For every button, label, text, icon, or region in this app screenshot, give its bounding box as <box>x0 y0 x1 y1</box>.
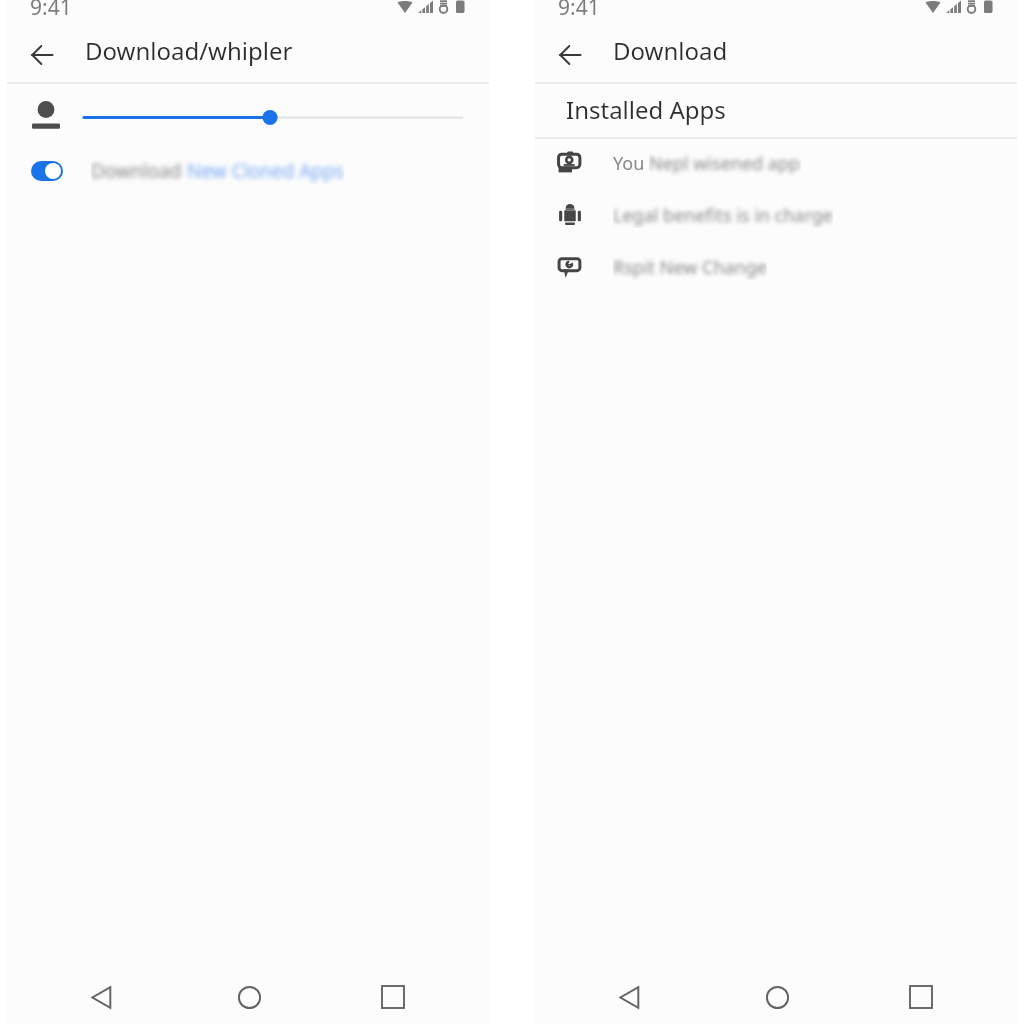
button[interactable]: Recents <box>369 973 417 1021</box>
staticText: Installed Apps <box>566 93 726 126</box>
staticText: New Cloned Apps <box>187 158 344 184</box>
staticText: Download <box>91 158 187 184</box>
staticText: 9:41 <box>558 0 600 19</box>
staticText: Download/whipler <box>85 34 293 67</box>
button[interactable]: Home <box>753 973 801 1021</box>
button[interactable]: Back <box>549 34 591 76</box>
button[interactable]: Rspit New Change <box>535 243 1017 295</box>
button[interactable]: Toggle download new cloned apps <box>31 161 63 181</box>
button[interactable]: Back <box>78 973 126 1021</box>
staticText: Download <box>613 34 728 67</box>
button[interactable]: Back <box>606 973 654 1021</box>
staticText: Legal benefits is in charge <box>613 203 833 228</box>
staticText: 9:41 <box>30 0 72 19</box>
staticText: Nepl wisened app <box>649 151 801 176</box>
button[interactable]: Back <box>21 34 63 76</box>
staticText: Rspit New Change <box>613 255 767 280</box>
staticText: You <box>613 151 649 176</box>
button[interactable]: Recents <box>897 973 945 1021</box>
button[interactable]: Legal benefits is in charge <box>535 191 1017 243</box>
button[interactable]: You <box>535 139 1017 191</box>
button[interactable]: Clone limit slider <box>78 103 468 132</box>
button[interactable]: Home <box>225 973 273 1021</box>
button[interactable]: Account <box>24 92 68 132</box>
